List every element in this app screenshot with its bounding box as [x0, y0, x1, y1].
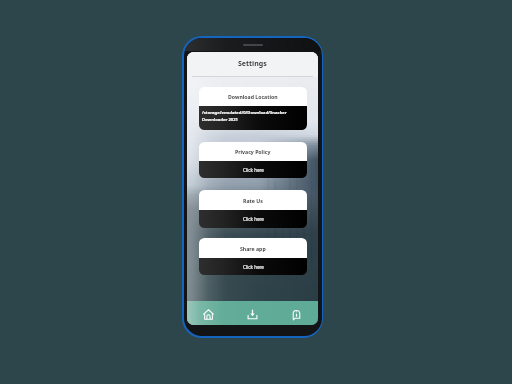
staticText: /storage/emulated/0/Download/Snacker Dow… [202, 110, 303, 122]
button[interactable]: Home [187, 301, 230, 325]
staticText: Settings [238, 59, 267, 69]
button[interactable]: About [274, 301, 318, 325]
button[interactable]: Download Location [199, 87, 307, 130]
staticText: Click here [243, 264, 264, 270]
staticText: Click here [243, 216, 264, 222]
button[interactable]: Downloads [230, 301, 274, 325]
staticText: Click here [243, 167, 264, 173]
staticText: Privacy Policy [235, 148, 271, 155]
staticText: Download Location [228, 93, 278, 100]
button[interactable]: Rate Us [199, 190, 307, 228]
button[interactable]: Privacy Policy [199, 142, 307, 178]
staticText: Rate Us [243, 197, 263, 204]
staticText: Share app [240, 245, 266, 252]
button[interactable]: Share app [199, 238, 307, 275]
